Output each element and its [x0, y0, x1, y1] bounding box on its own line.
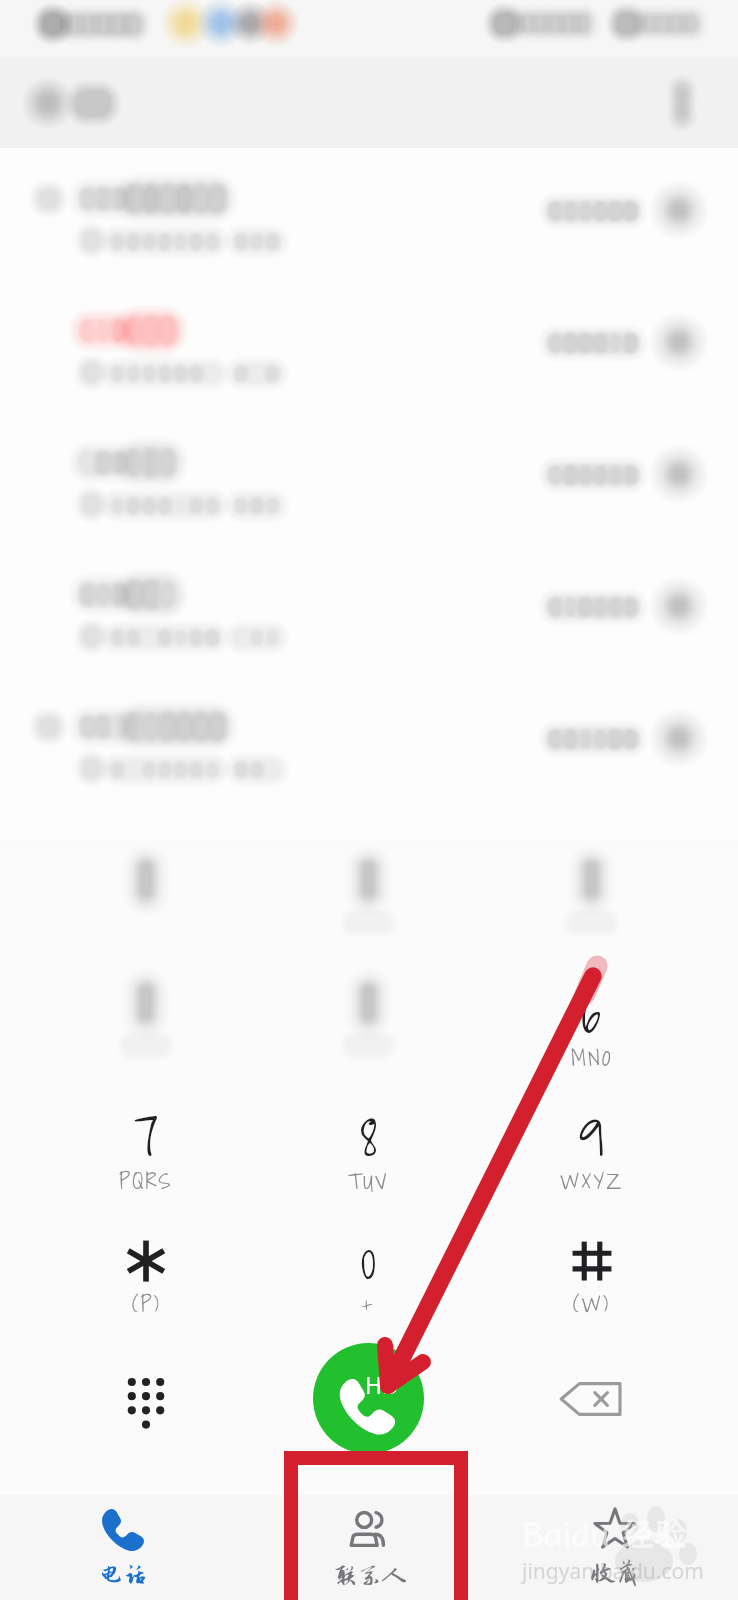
- button[interactable]: [35, 964, 257, 1087]
- staticText: HD: [365, 1369, 399, 1400]
- button[interactable]: [257, 964, 480, 1087]
- staticText: MNO: [571, 1040, 613, 1075]
- button[interactable]: 6: [480, 964, 703, 1087]
- staticText: (W): [573, 1286, 611, 1321]
- button[interactable]: Keypad: [35, 1333, 257, 1464]
- button[interactable]: 联系人: [246, 1495, 492, 1600]
- staticText: PQRS: [119, 1163, 173, 1198]
- staticText: 8: [360, 1093, 378, 1180]
- staticText: 7: [134, 1093, 159, 1180]
- button[interactable]: [0, 698, 738, 830]
- button[interactable]: 9: [480, 1087, 703, 1210]
- staticText: WXYZ: [560, 1163, 623, 1198]
- button[interactable]: [0, 170, 738, 302]
- button[interactable]: (P): [35, 1210, 257, 1333]
- button[interactable]: 0: [257, 1210, 480, 1333]
- button[interactable]: [480, 841, 703, 964]
- button[interactable]: Call: [313, 1343, 424, 1454]
- staticText: 收藏: [591, 1560, 640, 1587]
- button[interactable]: Backspace: [480, 1333, 703, 1464]
- button[interactable]: More options: [654, 75, 710, 131]
- staticText: TUV: [348, 1163, 389, 1198]
- button[interactable]: 8: [257, 1087, 480, 1210]
- staticText: Baidu 经验: [522, 1512, 688, 1555]
- button[interactable]: 7: [35, 1087, 257, 1210]
- button[interactable]: [0, 434, 738, 566]
- staticText: +: [362, 1286, 375, 1321]
- button[interactable]: [35, 841, 257, 964]
- button[interactable]: [0, 566, 738, 698]
- staticText: 电话: [99, 1561, 148, 1588]
- button[interactable]: Search: [0, 58, 738, 148]
- staticText: 0: [360, 1216, 377, 1303]
- staticText: 联系人: [333, 1562, 406, 1589]
- button[interactable]: [0, 302, 738, 434]
- staticText: 9: [579, 1093, 605, 1180]
- button[interactable]: 电话: [0, 1495, 246, 1600]
- staticText: 6: [581, 970, 602, 1057]
- button[interactable]: 收藏: [492, 1495, 738, 1600]
- staticText: jingyan.baidu.com: [522, 1557, 704, 1586]
- staticText: (P): [132, 1286, 161, 1321]
- button[interactable]: [257, 841, 480, 964]
- button[interactable]: (W): [480, 1210, 703, 1333]
